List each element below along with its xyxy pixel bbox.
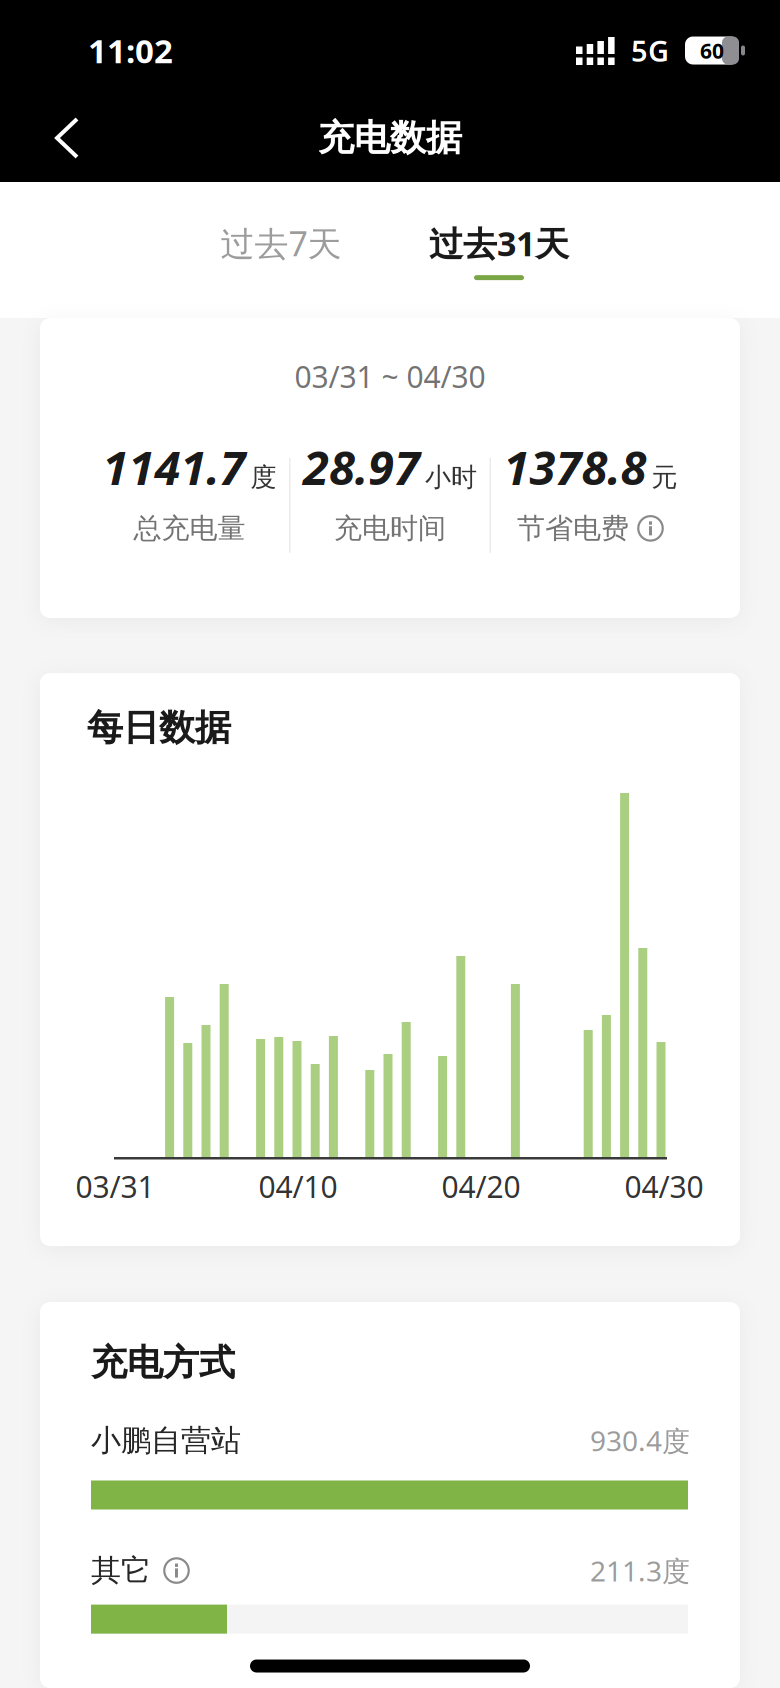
staticText: 211.3度: [590, 1551, 690, 1590]
staticText: 1378.8: [503, 435, 646, 499]
staticText: 03/31: [75, 1166, 154, 1207]
staticText: 度: [250, 461, 276, 494]
staticText: 充电时间: [334, 511, 446, 546]
staticText: 04/20: [441, 1166, 520, 1207]
staticText: 04/30: [624, 1166, 703, 1207]
staticText: 小鹏自营站: [91, 1421, 241, 1459]
staticText: 03/31 ~ 04/30: [294, 356, 485, 397]
staticText: 元: [651, 461, 677, 494]
staticText: 充电数据: [318, 115, 462, 161]
button[interactable]: 过去31天: [390, 220, 608, 280]
staticText: 充电方式: [91, 1340, 235, 1385]
staticText: 04/10: [258, 1166, 337, 1207]
staticText: 5G: [631, 31, 669, 70]
staticText: 1141.7: [102, 435, 245, 499]
staticText: 其它: [91, 1552, 151, 1589]
button[interactable]: Back: [0, 94, 99, 182]
button[interactable]: About saved cost: [637, 515, 664, 542]
staticText: 小时: [425, 461, 477, 494]
staticText: 过去7天: [220, 220, 341, 266]
staticText: 节省电费: [517, 511, 629, 546]
staticText: 每日数据: [87, 705, 231, 750]
button[interactable]: About other charging: [151, 1557, 190, 1584]
button[interactable]: 过去7天: [172, 220, 390, 280]
staticText: 930.4度: [590, 1421, 690, 1459]
staticText: 过去31天: [429, 220, 569, 266]
staticText: 28.97: [303, 435, 420, 499]
staticText: 11:02: [88, 28, 173, 73]
staticText: 60: [700, 36, 724, 65]
staticText: 总充电量: [133, 511, 245, 546]
